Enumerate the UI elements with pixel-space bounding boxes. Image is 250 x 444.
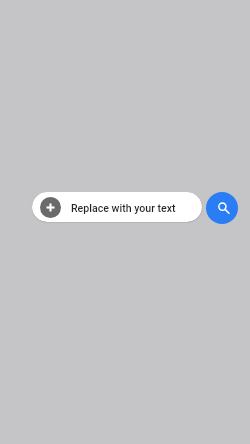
button[interactable]: Add: [32, 192, 202, 222]
button[interactable]: Search: [206, 192, 238, 224]
staticText: Replace with your text: [71, 202, 176, 214]
button[interactable]: Add: [40, 197, 61, 218]
